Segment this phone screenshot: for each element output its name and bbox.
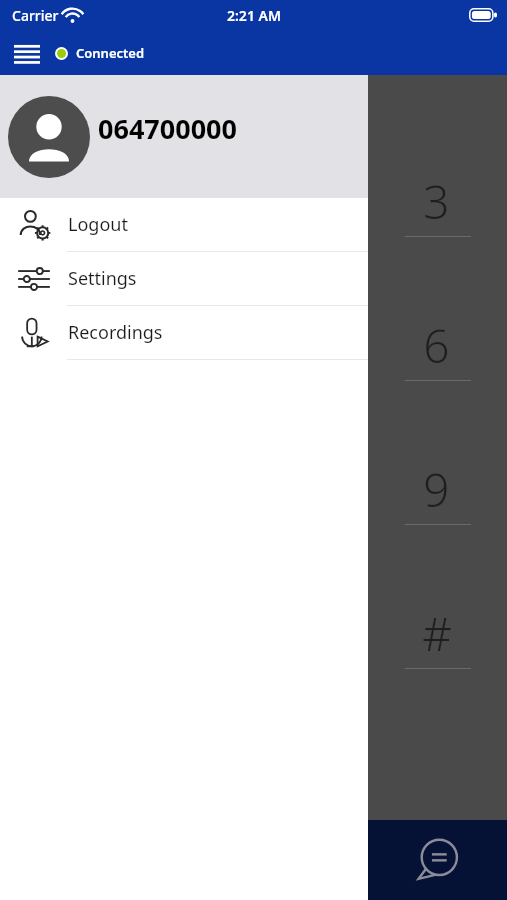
staticText: 6 — [423, 314, 450, 377]
button[interactable]: Open navigation menu — [6, 32, 48, 74]
staticText: 3 — [423, 170, 450, 233]
button[interactable]: 3 — [368, 170, 507, 314]
button[interactable]: # — [368, 602, 507, 746]
button[interactable]: Logout — [0, 198, 368, 252]
button[interactable]: Messages — [368, 820, 507, 900]
button[interactable]: Settings — [0, 252, 368, 306]
staticText: Connected — [76, 44, 145, 62]
staticText: # — [422, 602, 452, 665]
staticText: 064700000 — [98, 110, 237, 147]
staticText: Settings — [68, 266, 137, 291]
button[interactable]: Recordings — [0, 306, 368, 360]
button[interactable]: 064700000 — [0, 75, 368, 198]
button[interactable]: 9 — [368, 458, 507, 602]
button[interactable]: 6 — [368, 314, 507, 458]
staticText: Logout — [68, 212, 128, 237]
staticText: Recordings — [68, 320, 163, 345]
staticText: 2:21 AM — [227, 6, 281, 25]
staticText: Carrier — [12, 6, 59, 25]
staticText: 9 — [423, 458, 450, 521]
